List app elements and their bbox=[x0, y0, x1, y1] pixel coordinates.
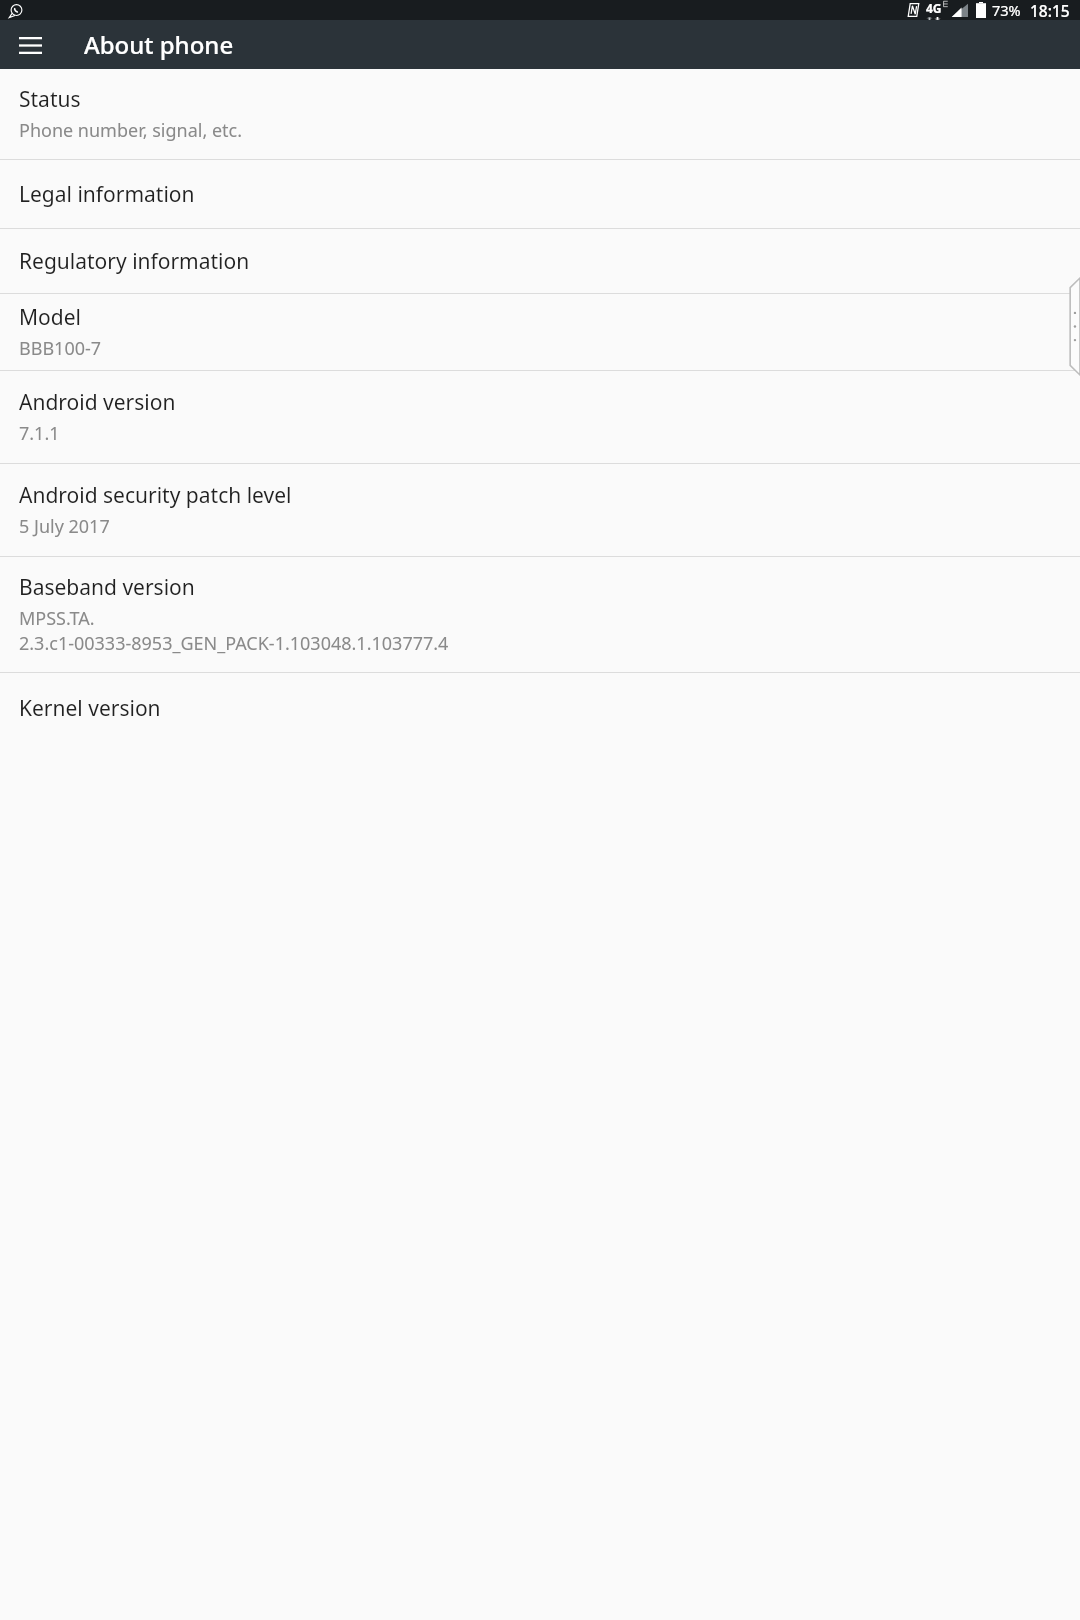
staticText: Android version bbox=[19, 388, 176, 417]
staticText: 73% bbox=[992, 0, 1021, 20]
staticText: 18:15 bbox=[1030, 0, 1070, 20]
button[interactable]: Open navigation menu bbox=[6, 21, 54, 69]
staticText: Phone number, signal, etc. bbox=[19, 118, 243, 143]
button[interactable]: Legal information bbox=[0, 160, 1080, 228]
staticText: 7.1.1 bbox=[19, 421, 60, 446]
staticText: Kernel version bbox=[19, 694, 161, 723]
staticText: 4G bbox=[926, 0, 942, 16]
staticText: Android security patch level bbox=[19, 481, 292, 510]
button[interactable]: Android version bbox=[0, 371, 1080, 463]
staticText: Legal information bbox=[19, 180, 195, 209]
button[interactable]: Regulatory information bbox=[0, 229, 1080, 293]
button[interactable]: Kernel version bbox=[0, 673, 1080, 743]
button[interactable]: Scroll bbox=[1068, 278, 1080, 375]
staticText: BBB100-7 bbox=[19, 336, 102, 361]
staticText: Regulatory information bbox=[19, 247, 250, 276]
staticText: Status bbox=[19, 85, 81, 114]
staticText: Baseband version bbox=[19, 573, 195, 602]
button[interactable]: Model bbox=[0, 294, 1080, 370]
staticText: 2.3.c1-00333-8953_GEN_PACK-1.103048.1.10… bbox=[19, 631, 449, 656]
staticText: Model bbox=[19, 303, 81, 332]
staticText: About phone bbox=[84, 28, 234, 61]
staticText: 5 July 2017 bbox=[19, 514, 110, 539]
button[interactable]: Baseband version bbox=[0, 557, 1080, 672]
button[interactable]: Status bbox=[0, 69, 1080, 159]
staticText: MPSS.TA. bbox=[19, 606, 95, 631]
button[interactable]: Android security patch level bbox=[0, 464, 1080, 556]
